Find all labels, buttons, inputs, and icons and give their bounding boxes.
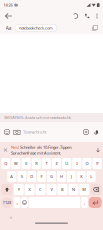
button[interactable]: Reload [69,10,81,22]
staticText: X [29,187,31,192]
staticText: SMS/MMS: Ausbruch mit notebookchk [4,115,71,120]
staticText: N [72,187,75,192]
button[interactable]: Y [14,184,24,195]
button[interactable]: L [87,171,96,182]
button[interactable]: More options [92,10,101,22]
staticText: . [84,199,85,206]
button[interactable]: Text size [2,23,15,33]
staticText: T [45,161,47,166]
staticText: V [50,187,52,192]
staticText: G [50,174,53,179]
button[interactable]: N [68,184,78,195]
staticText: C [39,187,42,192]
staticText: H [60,174,63,179]
button[interactable]: Return [89,197,102,208]
button[interactable]: T [42,158,51,169]
button[interactable]: Emoji keyboard [21,197,28,208]
staticText: O [85,161,88,166]
button[interactable]: B [57,184,67,195]
button[interactable]: Q [1,158,10,169]
staticText: K [80,174,82,179]
staticText: Y [18,187,20,192]
button[interactable]: F [37,171,46,182]
staticText: I [76,161,77,166]
staticText: L [90,174,92,179]
staticText: S [21,174,23,179]
button[interactable]: D [27,171,36,182]
staticText: D [30,174,33,179]
button[interactable]: H [57,171,66,182]
staticText: 14:26 [3,2,12,8]
staticText: Sprachanfrage mit Assistent. [11,150,61,155]
staticText: notebookcheck.com [19,25,53,31]
staticText: ?123 [3,200,11,205]
button[interactable]: . [81,197,88,208]
staticText: Textnachricht [23,129,46,135]
staticText: U [65,161,68,166]
button[interactable]: Backspace [90,184,102,195]
button[interactable]: R [32,158,41,169]
button[interactable]: Back [1,10,15,22]
staticText: J [71,174,72,179]
staticText: Aa [5,24,11,32]
button[interactable]: P [93,158,102,169]
staticText: A [10,174,13,179]
button[interactable]: Symbols [1,197,13,208]
button[interactable]: Camera [12,125,22,139]
button[interactable]: Attach [81,125,91,139]
button[interactable]: C [36,184,45,195]
button[interactable]: S [17,171,26,182]
button[interactable]: I [72,158,81,169]
staticText: E [25,161,27,166]
button[interactable]: K [77,171,86,182]
staticText: Schneller als 10-Finger-Tippen: [20,144,72,150]
button[interactable]: X [25,184,34,195]
button[interactable]: Z [52,158,61,169]
button[interactable]: Emoji [2,125,12,139]
button[interactable]: V [46,184,56,195]
button[interactable]: W [11,158,20,169]
button[interactable]: Call [81,10,92,22]
button[interactable]: O [82,158,91,169]
staticText: Q [4,161,7,166]
button[interactable]: J [67,171,76,182]
button[interactable]: Shift [1,184,13,195]
button[interactable]: A [7,171,16,182]
button[interactable]: , [14,197,20,208]
staticText: Z [56,161,58,166]
button[interactable]: Tabs [89,23,101,33]
staticText: M [82,187,86,192]
staticText: Neu! [11,144,19,150]
staticText: W [14,161,18,166]
staticText: R [35,161,37,166]
button[interactable]: G [47,171,56,182]
staticText: , [16,199,17,206]
staticText: P [96,161,98,166]
button[interactable]: E [22,158,31,169]
staticText: B [61,187,64,192]
button[interactable]: Voice input [91,125,101,139]
button[interactable]: U [62,158,71,169]
button[interactable]: Dismiss [0,142,11,158]
staticText: F [41,174,43,179]
button[interactable]: Expand [93,142,103,158]
button[interactable]: M [79,184,89,195]
